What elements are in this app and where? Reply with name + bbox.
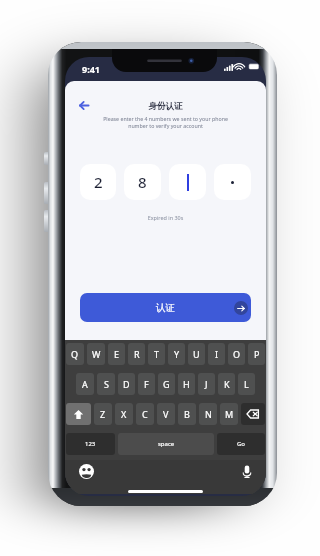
button[interactable]: T: [148, 343, 165, 365]
button[interactable]: 认证: [80, 293, 251, 322]
button[interactable]: I: [208, 343, 225, 365]
button[interactable]: [214, 164, 251, 200]
staticText: 9:41: [82, 63, 100, 75]
staticText: P: [254, 348, 260, 360]
button[interactable]: N: [199, 403, 217, 425]
staticText: G: [163, 378, 170, 390]
button[interactable]: Y: [168, 343, 185, 365]
button[interactable]: space: [118, 433, 214, 455]
button[interactable]: E: [108, 343, 125, 365]
staticText: Go: [237, 440, 245, 448]
button[interactable]: O: [228, 343, 245, 365]
staticText: 2: [94, 172, 103, 192]
button[interactable]: G: [158, 373, 175, 395]
button[interactable]: 123: [66, 433, 115, 455]
staticText: Q: [71, 348, 79, 360]
staticText: R: [134, 348, 140, 360]
button[interactable]: 2: [80, 164, 116, 200]
staticText: N: [205, 408, 212, 420]
staticText: A: [82, 378, 88, 390]
staticText: U: [193, 348, 200, 360]
button[interactable]: [169, 164, 206, 200]
button[interactable]: A: [76, 373, 94, 395]
staticText: J: [205, 378, 208, 390]
button[interactable]: M: [220, 403, 238, 425]
staticText: V: [163, 408, 169, 420]
button[interactable]: C: [136, 403, 154, 425]
button[interactable]: 8: [124, 164, 161, 200]
button[interactable]: S: [97, 373, 115, 395]
button[interactable]: X: [115, 403, 133, 425]
staticText: H: [183, 378, 190, 390]
staticText: C: [142, 408, 148, 420]
button[interactable]: Backspace: [241, 403, 265, 425]
staticText: 123: [85, 440, 96, 448]
button[interactable]: Go: [217, 433, 265, 455]
staticText: F: [144, 378, 149, 390]
button[interactable]: Emoji: [77, 462, 95, 480]
staticText: W: [92, 348, 101, 360]
staticText: K: [224, 378, 230, 390]
button[interactable]: Q: [66, 343, 84, 365]
staticText: E: [114, 348, 120, 360]
staticText: L: [244, 378, 249, 390]
button[interactable]: P: [248, 343, 265, 365]
staticText: B: [184, 408, 190, 420]
staticText: S: [104, 378, 109, 390]
button[interactable]: J: [198, 373, 215, 395]
staticText: Z: [100, 408, 106, 420]
button[interactable]: D: [118, 373, 135, 395]
button[interactable]: W: [87, 343, 105, 365]
staticText: D: [123, 378, 130, 390]
button[interactable]: H: [178, 373, 195, 395]
staticText: X: [121, 408, 127, 420]
staticText: Expired in 30s: [65, 214, 266, 221]
button[interactable]: Voice input: [238, 462, 256, 480]
button[interactable]: B: [178, 403, 196, 425]
button[interactable]: Shift: [66, 403, 91, 425]
staticText: Please enter the 4 numbers we sent to yo…: [73, 115, 258, 129]
staticText: T: [154, 348, 160, 360]
button[interactable]: V: [157, 403, 175, 425]
button[interactable]: R: [128, 343, 145, 365]
button[interactable]: U: [188, 343, 205, 365]
staticText: 身份认证: [65, 101, 266, 112]
staticText: 8: [138, 172, 147, 192]
staticText: 认证: [156, 302, 175, 314]
button[interactable]: F: [138, 373, 155, 395]
button[interactable]: K: [218, 373, 235, 395]
button[interactable]: Z: [94, 403, 112, 425]
button[interactable]: L: [238, 373, 255, 395]
staticText: space: [158, 440, 175, 448]
staticText: I: [215, 348, 219, 360]
button[interactable]: Back: [73, 95, 94, 116]
staticText: O: [233, 348, 241, 360]
staticText: Y: [174, 348, 180, 360]
staticText: M: [225, 408, 234, 420]
